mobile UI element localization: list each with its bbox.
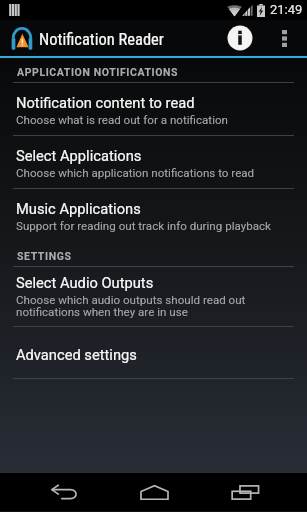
button[interactable]: More options: [265, 20, 303, 56]
button[interactable]: Back: [19, 473, 109, 511]
staticText: APPLICATION NOTIFICATIONS: [17, 66, 179, 78]
button[interactable]: Music Applications: [0, 189, 307, 242]
staticText: Music Applications: [16, 200, 141, 217]
staticText: Choose which audio outputs should read o…: [16, 293, 246, 319]
staticText: Notification content to read: [16, 94, 195, 111]
button[interactable]: Home: [109, 473, 199, 511]
staticText: Advanced settings: [16, 346, 137, 363]
staticText: 21:49: [270, 2, 303, 17]
staticText: Support for reading out track info durin…: [16, 219, 271, 233]
staticText: Choose what is read out for a notificati…: [16, 113, 228, 127]
button[interactable]: Notification content to read: [0, 83, 307, 136]
button[interactable]: Advanced settings: [0, 327, 307, 379]
button[interactable]: Info: [214, 20, 265, 56]
staticText: Choose which application notifications t…: [16, 166, 255, 180]
staticText: Select Applications: [16, 147, 142, 164]
staticText: Select Audio Outputs: [16, 274, 154, 291]
button[interactable]: Select Applications: [0, 136, 307, 189]
button[interactable]: Recents: [200, 473, 290, 511]
button[interactable]: Select Audio Outputs: [0, 267, 307, 327]
staticText: Notification Reader: [39, 30, 164, 49]
staticText: SETTINGS: [17, 250, 72, 262]
